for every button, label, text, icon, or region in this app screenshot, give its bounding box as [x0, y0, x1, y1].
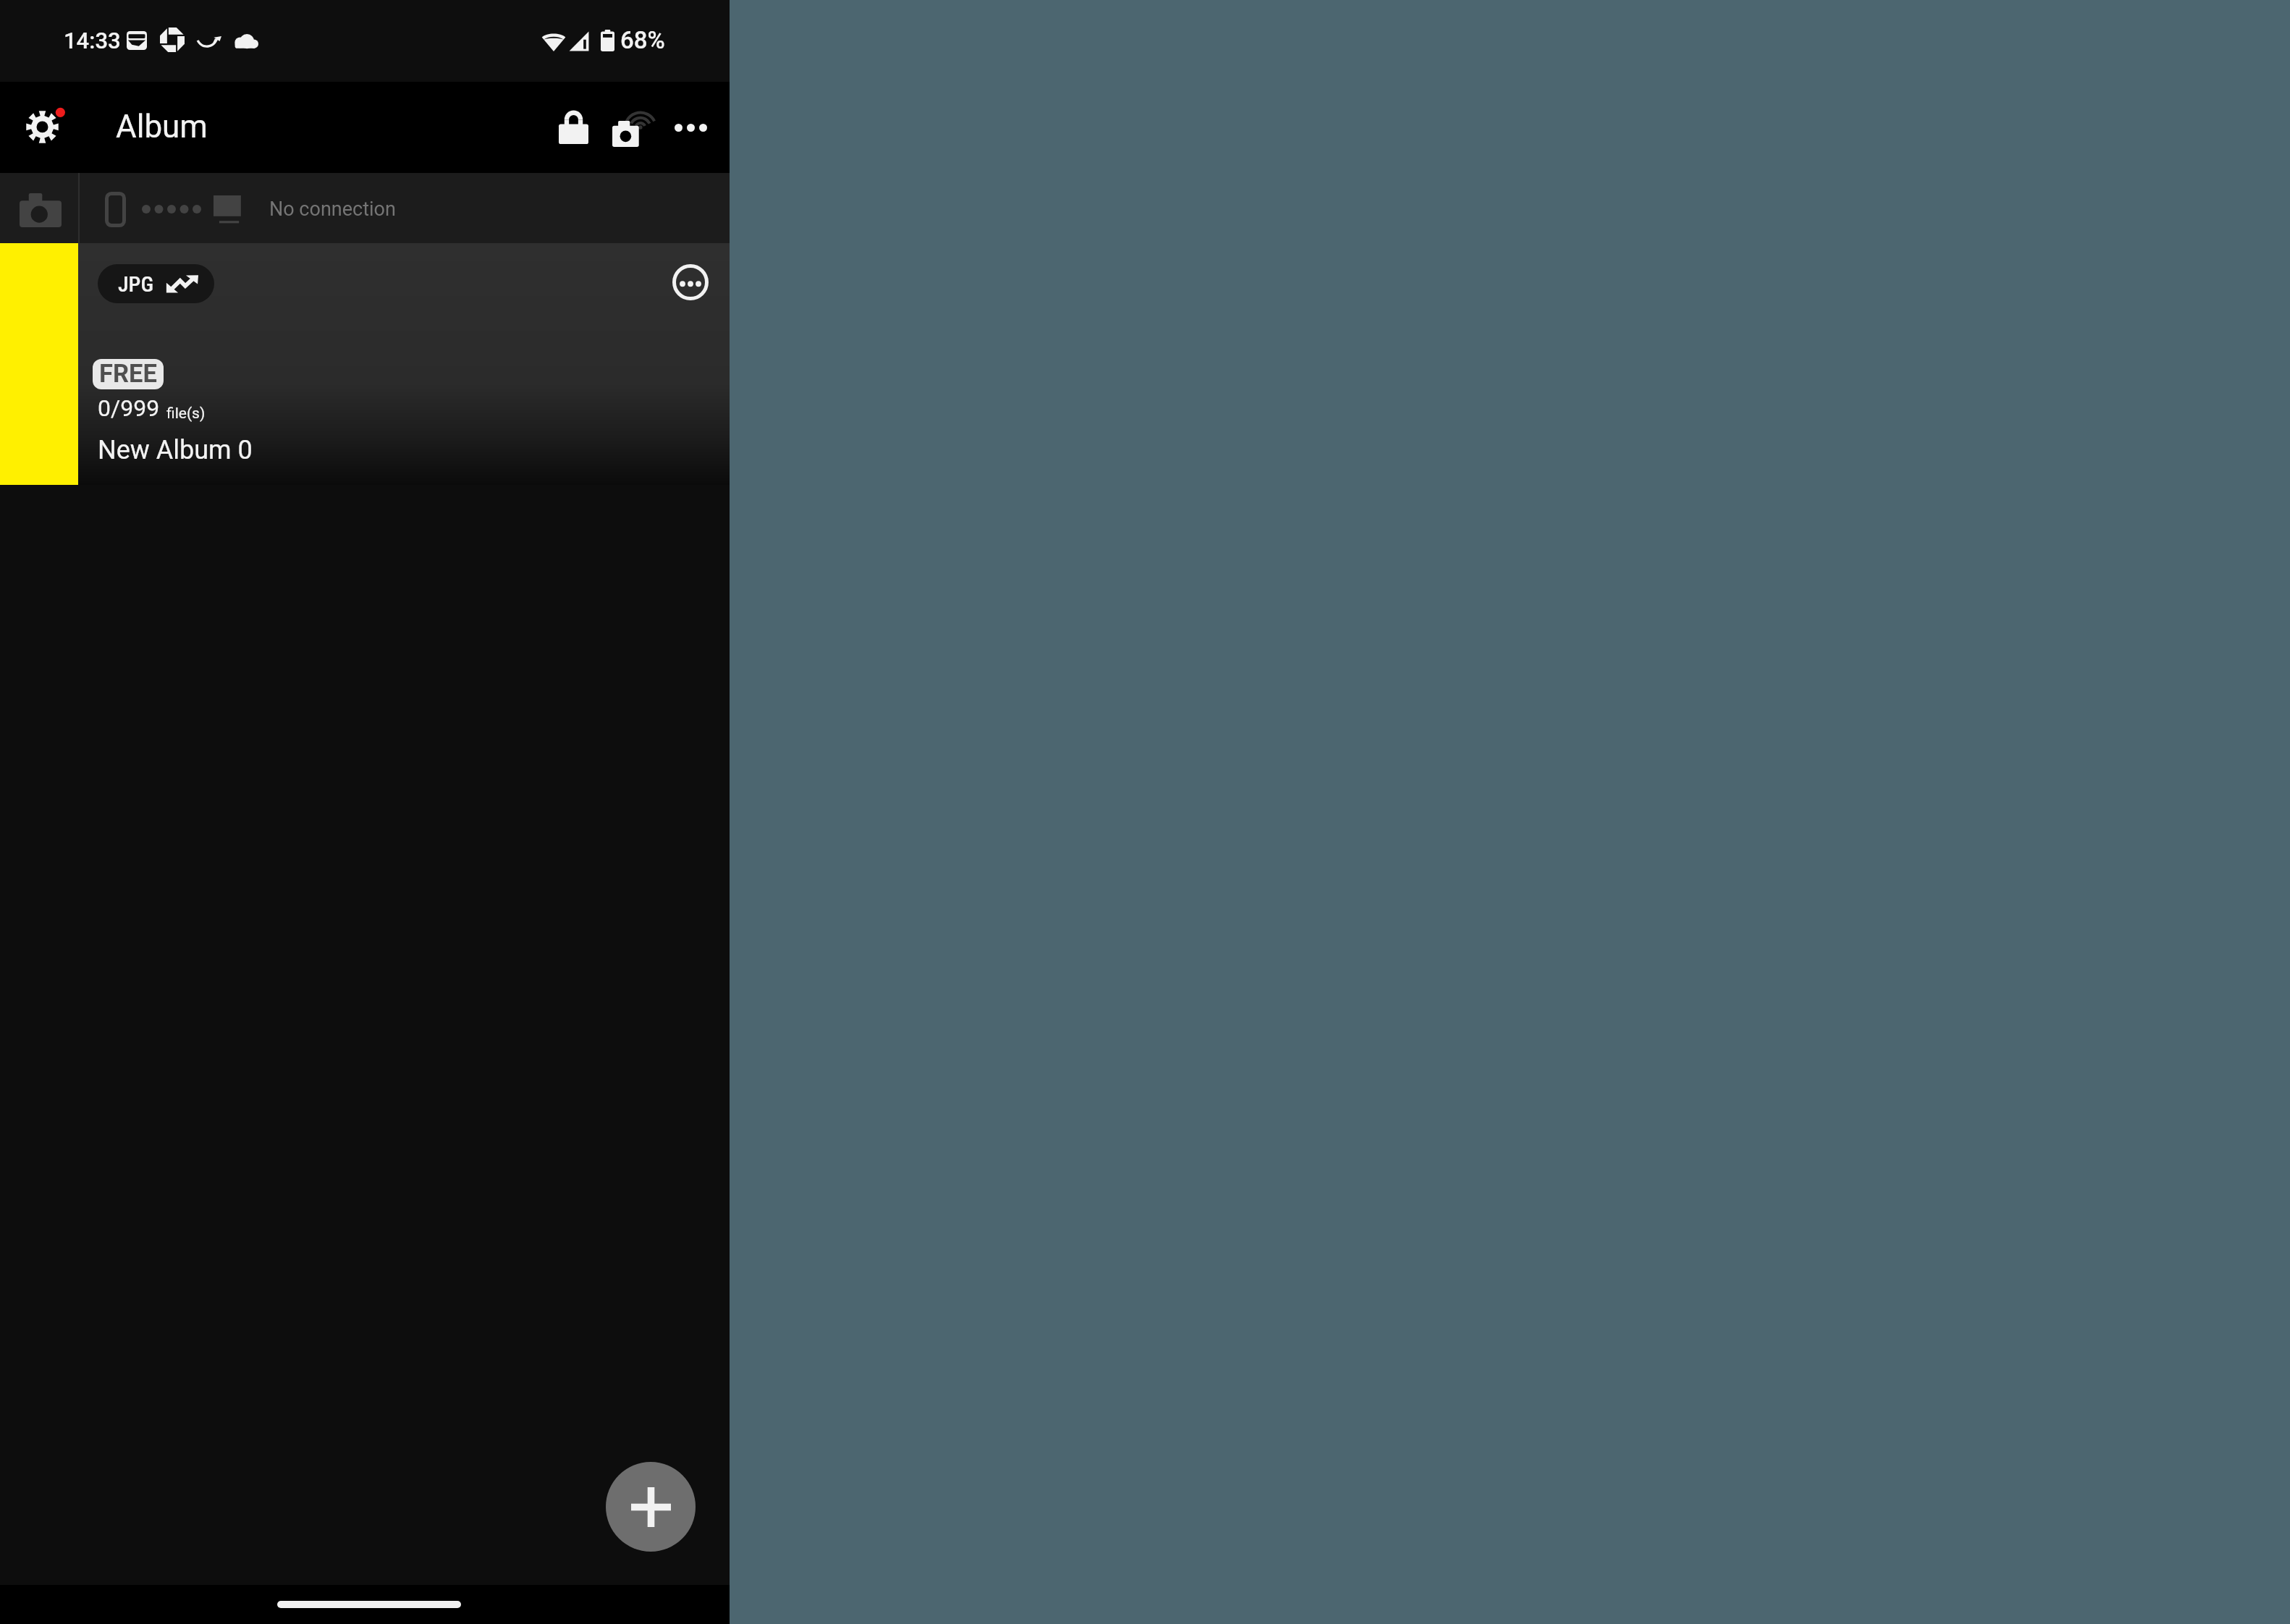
- staticText: JPG: [118, 271, 154, 297]
- button[interactable]: No connection: [0, 173, 730, 243]
- button[interactable]: More options: [662, 91, 719, 164]
- staticText: No connection: [269, 198, 396, 221]
- button[interactable]: Album options: [672, 264, 709, 300]
- button[interactable]: JPG: [0, 243, 730, 485]
- staticText: New Album 0: [98, 435, 253, 465]
- button[interactable]: Add album: [606, 1462, 696, 1552]
- button[interactable]: Settings: [9, 95, 75, 160]
- staticText: FREE: [99, 359, 157, 388]
- button[interactable]: Camera Wi-Fi transfer: [601, 91, 662, 164]
- staticText: file(s): [166, 405, 206, 423]
- staticText: 0/999: [98, 394, 160, 422]
- button[interactable]: Lock: [544, 91, 603, 164]
- button[interactable]: JPG: [98, 264, 214, 303]
- staticText: Album: [116, 108, 208, 145]
- staticText: 68%: [620, 26, 665, 54]
- staticText: 14:33: [64, 28, 121, 54]
